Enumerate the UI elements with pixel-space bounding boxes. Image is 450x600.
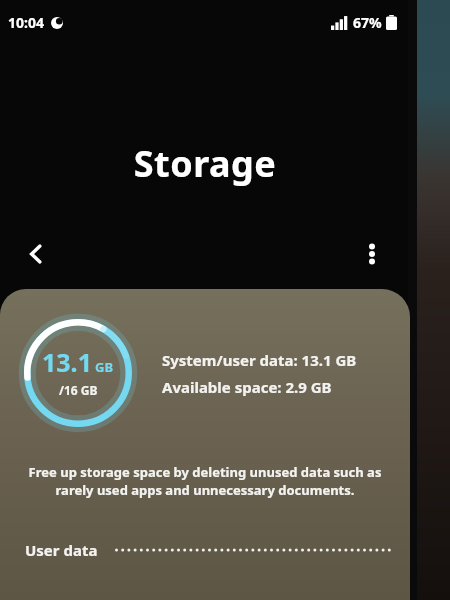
- staticText: User data: [25, 540, 98, 560]
- button[interactable]: More options: [350, 232, 394, 276]
- staticText: GB: [95, 358, 114, 376]
- staticText: System/user data: 13.1 GB: [162, 350, 357, 370]
- staticText: Available space: 2.9 GB: [162, 377, 332, 397]
- staticText: Storage: [0, 139, 410, 188]
- staticText: /16 GB: [59, 382, 98, 398]
- staticText: 10:04: [8, 13, 44, 32]
- button[interactable]: Back: [14, 232, 58, 276]
- button[interactable]: User data: [0, 530, 410, 570]
- staticText: 13.1: [42, 345, 92, 379]
- button[interactable]: 13.1: [0, 289, 410, 600]
- staticText: 67%: [353, 13, 382, 32]
- staticText: Free up storage space by deleting unused…: [26, 463, 384, 499]
